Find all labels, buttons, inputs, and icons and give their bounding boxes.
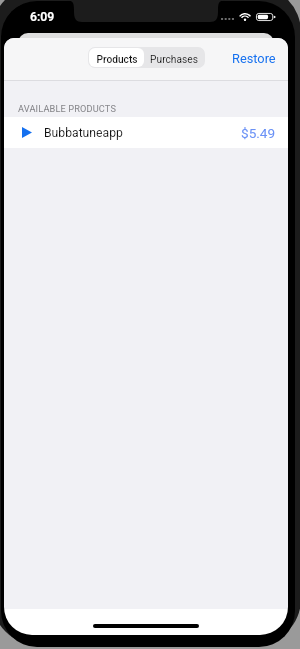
staticText: Purchases xyxy=(150,54,198,66)
button[interactable]: Restore xyxy=(219,45,288,72)
staticText: Products xyxy=(96,54,138,66)
staticText: Restore xyxy=(232,51,276,66)
staticText: 6:09 xyxy=(30,10,55,24)
staticText: AVAILABLE PRODUCTS xyxy=(18,103,116,114)
staticText: $5.49 xyxy=(241,125,276,141)
button[interactable]: Products xyxy=(89,48,144,67)
staticText: Bubbatuneapp xyxy=(44,126,123,140)
button[interactable]: Purchases xyxy=(144,48,204,67)
button[interactable]: Bubbatuneapp xyxy=(4,117,288,148)
